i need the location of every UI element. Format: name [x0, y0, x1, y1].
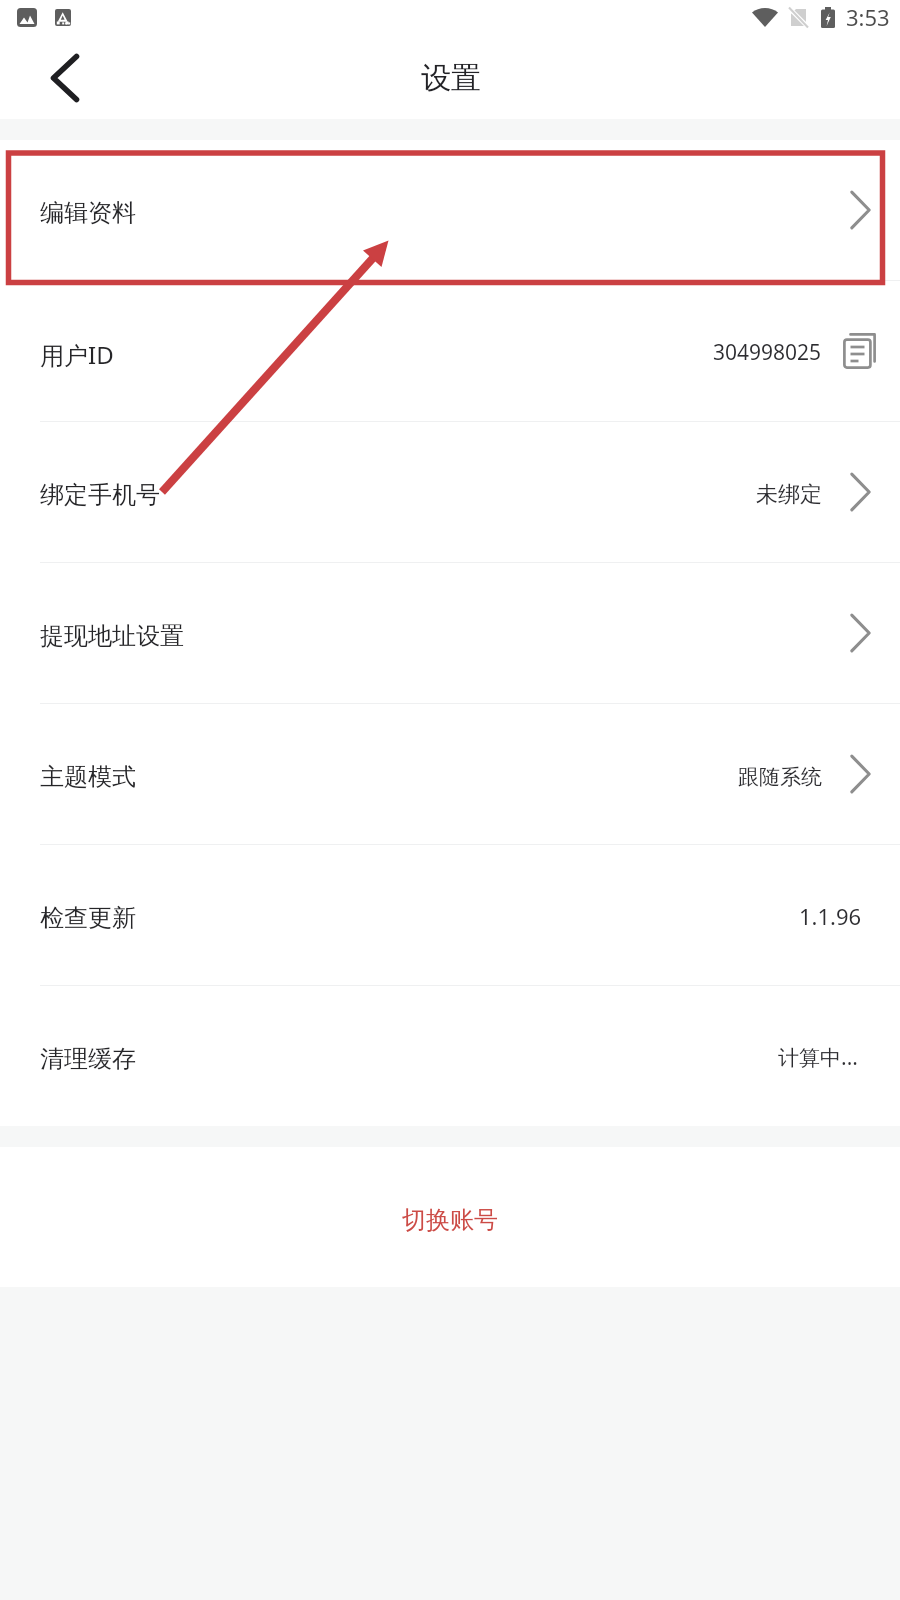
- staticText: 检查更新: [40, 903, 136, 933]
- button[interactable]: 用户ID: [0, 281, 900, 421]
- button[interactable]: 编辑资料: [0, 140, 900, 280]
- button[interactable]: 提现地址设置: [0, 563, 900, 703]
- staticText: 切换账号: [402, 1205, 498, 1235]
- button[interactable]: 切换账号: [0, 1147, 900, 1287]
- button[interactable]: 主题模式: [0, 704, 900, 844]
- staticText: 3:53: [846, 2, 890, 32]
- staticText: 304998025: [713, 338, 822, 367]
- staticText: 跟随系统: [738, 764, 822, 790]
- staticText: 清理缓存: [40, 1044, 136, 1074]
- staticText: 绑定手机号: [40, 480, 160, 510]
- button[interactable]: Back: [0, 44, 110, 119]
- staticText: 未绑定: [756, 481, 822, 509]
- button[interactable]: 绑定手机号: [0, 422, 900, 562]
- staticText: 设置: [421, 59, 481, 97]
- button[interactable]: 检查更新: [0, 845, 900, 985]
- staticText: 计算中...: [778, 1043, 858, 1072]
- staticText: 提现地址设置: [40, 621, 184, 651]
- staticText: 用户ID: [40, 338, 114, 371]
- button[interactable]: 清理缓存: [0, 986, 900, 1126]
- staticText: 1.1.96: [799, 901, 862, 931]
- button[interactable]: Copy user ID: [843, 333, 876, 369]
- staticText: 主题模式: [40, 762, 136, 792]
- staticText: 编辑资料: [40, 198, 136, 228]
